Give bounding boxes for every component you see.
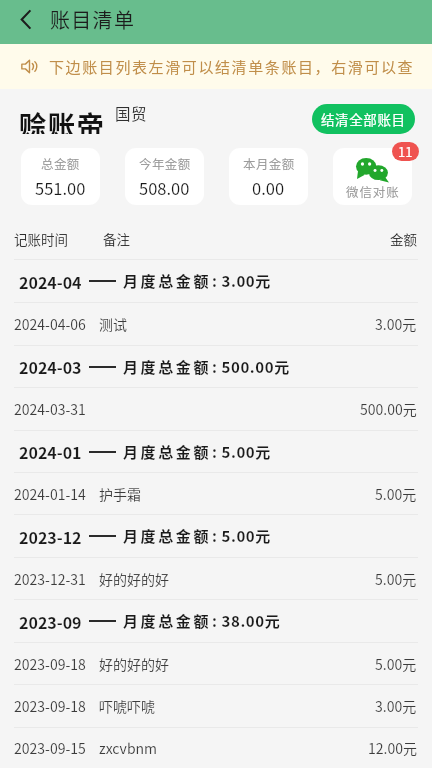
staticText: 2024-03-31 <box>14 399 86 419</box>
staticText: 月度总金额 <box>123 441 212 463</box>
staticText: 2024-03 <box>19 355 82 378</box>
staticText: : 38.00元 <box>212 610 281 632</box>
staticText: 护手霜 <box>99 484 141 504</box>
staticText: 2024-04-06 <box>14 314 86 334</box>
button[interactable]: 2024-03-31 <box>0 388 432 430</box>
button[interactable]: 2024-04 <box>0 260 432 302</box>
staticText: 月度总金额 <box>123 356 212 378</box>
staticText: 11 <box>398 142 413 161</box>
staticText: 本月金额 <box>243 154 295 172</box>
staticText: 记账时间 <box>14 229 68 249</box>
staticText: 月度总金额 <box>123 525 212 547</box>
button[interactable]: 总金额 <box>21 148 100 205</box>
button[interactable]: 2023-12-31 <box>0 558 432 599</box>
staticText: 总金额 <box>41 154 80 172</box>
staticText: 2023-12 <box>19 525 82 548</box>
staticText: 微信对账 <box>346 182 400 200</box>
button[interactable]: 结清全部账目 <box>312 104 415 134</box>
staticText: 2023-09-18 <box>14 696 86 716</box>
button[interactable]: 2023-09-18 <box>0 643 432 684</box>
staticText: 今年金额 <box>139 154 191 172</box>
button[interactable]: 2023-12 <box>0 515 432 557</box>
staticText: 2023-09-15 <box>14 738 86 758</box>
button[interactable]: Back <box>7 1 43 37</box>
staticText: 2023-09 <box>19 610 82 633</box>
staticText: 551.00 <box>35 176 86 200</box>
staticText: 2024-01-14 <box>14 484 86 504</box>
button[interactable]: 本月金额 <box>229 148 308 205</box>
staticText: 月度总金额 <box>123 610 212 632</box>
staticText: zxcvbnm <box>99 738 158 758</box>
staticText: : 5.00元 <box>212 525 271 547</box>
staticText: 3.00元 <box>375 314 417 334</box>
staticText: 3.00元 <box>375 696 417 716</box>
button[interactable]: 2024-01 <box>0 431 432 472</box>
staticText: 月度总金额 <box>123 270 212 292</box>
staticText: 测试 <box>99 314 127 334</box>
staticText: 2024-04 <box>19 270 82 293</box>
staticText: 好的好的好 <box>99 569 169 589</box>
staticText: 12.00元 <box>368 738 417 758</box>
button[interactable]: 2023-09-15 <box>0 728 432 768</box>
staticText: : 3.00元 <box>212 270 271 292</box>
button[interactable]: 2024-04-06 <box>0 303 432 345</box>
button[interactable]: 2024-03 <box>0 346 432 387</box>
button[interactable]: 今年金额 <box>125 148 204 205</box>
staticText: 5.00元 <box>375 484 417 504</box>
staticText: 赊账帝 <box>19 104 106 134</box>
button[interactable]: 2023-09-18 <box>0 685 432 727</box>
staticText: 账目清单 <box>50 5 136 34</box>
button[interactable]: 微信对账 <box>333 148 412 205</box>
staticText: 结清全部账目 <box>321 109 406 129</box>
staticText: 5.00元 <box>375 654 417 674</box>
staticText: 0.00 <box>252 176 285 200</box>
staticText: : 500.00元 <box>212 356 290 378</box>
staticText: 下边账目列表左滑可以结清单条账目，右滑可以查 <box>49 56 415 78</box>
staticText: 好的好的好 <box>99 654 169 674</box>
button[interactable]: 2024-01-14 <box>0 473 432 514</box>
staticText: 金额 <box>390 229 417 249</box>
staticText: 2023-12-31 <box>14 569 86 589</box>
button[interactable]: 2023-09 <box>0 600 432 642</box>
staticText: 2024-01 <box>19 440 82 463</box>
staticText: 备注 <box>103 229 130 249</box>
staticText: 2023-09-18 <box>14 654 86 674</box>
staticText: 500.00元 <box>360 399 417 419</box>
staticText: : 5.00元 <box>212 441 271 463</box>
staticText: 吓唬吓唬 <box>99 696 155 716</box>
staticText: 508.00 <box>139 176 190 200</box>
staticText: 国贸 <box>115 102 148 124</box>
staticText: 5.00元 <box>375 569 417 589</box>
